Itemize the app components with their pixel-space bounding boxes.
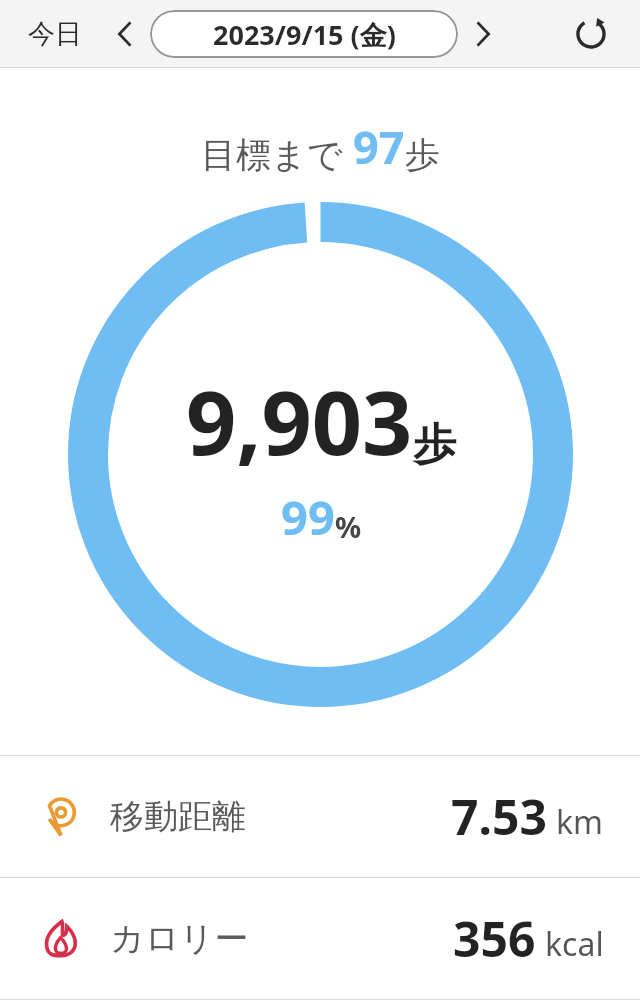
staticText: km <box>556 800 604 844</box>
button[interactable]: Next day <box>460 11 506 57</box>
staticText: 歩 <box>405 133 440 177</box>
staticText: 歩 <box>413 418 456 472</box>
staticText: 97 <box>353 116 405 177</box>
staticText: 今日 <box>28 17 82 51</box>
staticText: 移動距離 <box>110 795 246 838</box>
staticText: % <box>335 507 362 546</box>
staticText: 目標まで <box>201 133 343 177</box>
other: Calories <box>38 916 84 962</box>
staticText: 99 <box>281 485 335 549</box>
button[interactable]: 今日 <box>24 9 86 59</box>
staticText: 9,903 <box>186 361 413 481</box>
button[interactable]: Previous day <box>102 11 148 57</box>
button[interactable]: Refresh <box>564 7 618 61</box>
button[interactable]: Distance <box>0 756 640 877</box>
staticText: 2023/9/15 (金) <box>213 16 396 53</box>
staticText: kcal <box>545 922 604 966</box>
staticText: 356 <box>453 906 536 971</box>
other: Distance <box>38 794 84 840</box>
staticText: 7.53 <box>451 784 547 849</box>
staticText: カロリー <box>110 917 249 960</box>
button[interactable]: 2023/9/15 (金) <box>150 10 458 58</box>
button[interactable]: Calories <box>0 878 640 999</box>
